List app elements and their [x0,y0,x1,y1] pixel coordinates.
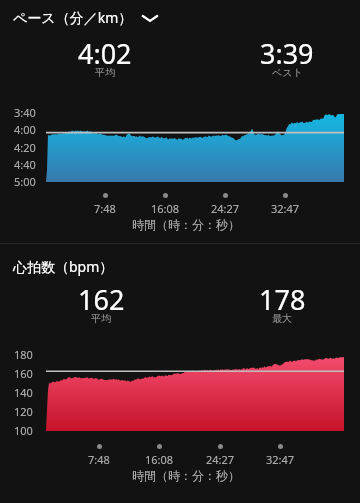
staticText: 160 [14,366,33,381]
button[interactable]: メトリクスを選択 [141,10,159,26]
staticText: 4:20 [14,140,36,155]
staticText: 平均 [95,66,115,79]
staticText: 7:48 [94,201,116,216]
staticText: 平均 [91,312,111,325]
staticText: 100 [14,423,33,438]
button[interactable]: ペース（分／km） [13,8,159,27]
staticText: 時間（時：分：秒） [132,217,240,232]
staticText: 24:27 [211,201,240,216]
staticText: 140 [14,385,33,400]
staticText: 32:47 [266,452,295,467]
staticText: 24:27 [206,452,235,467]
staticText: 3:39 [260,35,314,72]
staticText: 178 [259,281,306,318]
staticText: 32:47 [271,201,300,216]
staticText: 7:48 [88,452,110,467]
staticText: 16:08 [145,452,174,467]
staticText: 心拍数（bpm） [13,257,114,276]
staticText: 16:08 [151,201,180,216]
button[interactable]: 心拍数（bpm） [13,257,114,276]
staticText: 時間（時：分：秒） [132,468,240,483]
staticText: 4:40 [14,157,36,172]
staticText: 162 [78,281,125,318]
staticText: 180 [14,347,33,362]
staticText: 5:00 [14,174,36,189]
staticText: 4:00 [14,122,36,137]
staticText: 4:02 [78,35,132,72]
staticText: ベスト [272,66,303,79]
staticText: 3:40 [14,105,36,120]
staticText: 120 [14,404,33,419]
staticText: ペース（分／km） [13,8,133,27]
staticText: 最大 [272,312,292,325]
